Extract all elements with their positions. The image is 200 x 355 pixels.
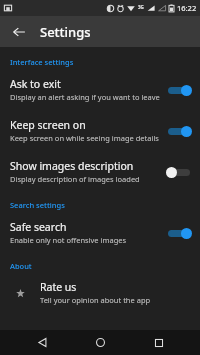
staticText: Settings bbox=[40, 23, 91, 41]
button[interactable]: Recent apps bbox=[142, 330, 176, 355]
staticText: Keep screen on bbox=[10, 118, 86, 132]
staticText: 3G bbox=[138, 4, 144, 10]
button[interactable]: Safe search bbox=[0, 212, 200, 253]
staticText: Show images description bbox=[10, 159, 134, 173]
button[interactable]: Back bbox=[4, 17, 34, 47]
button[interactable]: Off bbox=[166, 165, 192, 179]
button[interactable]: Show images description bbox=[0, 151, 200, 192]
button[interactable]: Home bbox=[83, 330, 117, 355]
button[interactable]: On bbox=[166, 226, 192, 240]
staticText: Keep screen on while seeing image detail… bbox=[10, 133, 159, 143]
staticText: Safe search bbox=[10, 220, 67, 234]
staticText: Ask to exit bbox=[10, 77, 61, 91]
staticText: Search settings bbox=[10, 200, 65, 210]
button[interactable]: Back bbox=[25, 330, 59, 355]
staticText: Tell your opinion about the app bbox=[40, 295, 151, 305]
staticText: Display an alert asking if you want to l… bbox=[10, 92, 160, 102]
staticText: Interface settings bbox=[10, 57, 74, 67]
staticText: Rate us bbox=[40, 280, 77, 294]
staticText: 16:22 bbox=[177, 3, 197, 13]
button[interactable]: Keep screen on bbox=[0, 110, 200, 151]
staticText: Enable only not offensive images bbox=[10, 235, 127, 245]
staticText: Display description of images loaded bbox=[10, 174, 140, 184]
button[interactable]: On bbox=[166, 83, 192, 97]
button[interactable]: Ask to exit bbox=[0, 69, 200, 110]
staticText: About bbox=[10, 261, 32, 271]
button[interactable]: On bbox=[166, 124, 192, 138]
button[interactable]: Rate us bbox=[0, 273, 200, 312]
